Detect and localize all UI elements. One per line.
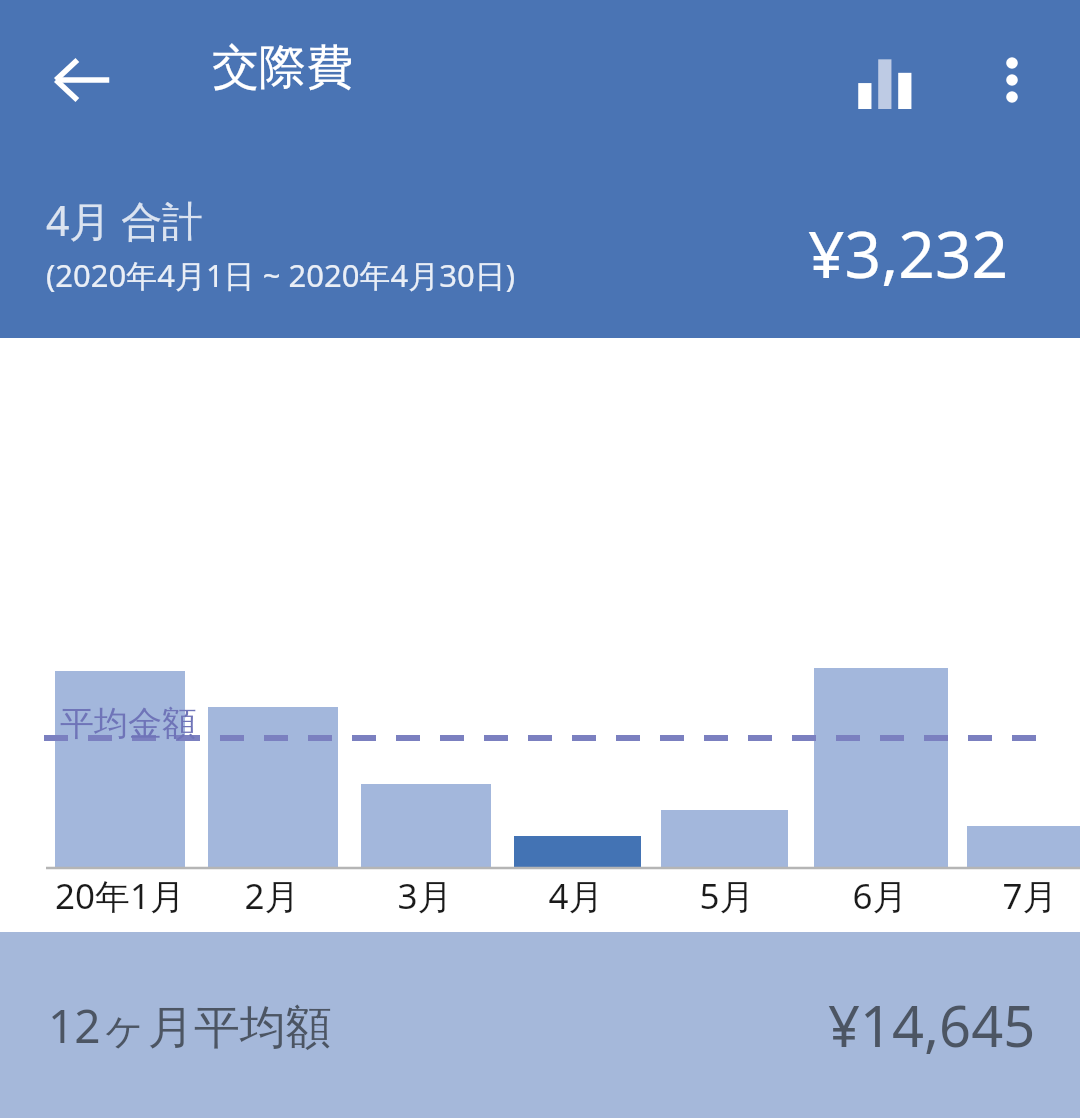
staticText: ¥3,232 — [808, 210, 1009, 297]
staticText: 20年1月 — [30, 872, 210, 920]
staticText: (2020年4月1日 ~ 2020年4月30日) — [46, 254, 515, 296]
staticText: 平均金額 — [60, 702, 196, 745]
staticText: 7月 — [940, 872, 1080, 920]
staticText: 3月 — [335, 872, 515, 920]
staticText: 4月 — [486, 872, 666, 920]
button[interactable]: Bar chart — [826, 26, 938, 138]
staticText: ¥14,645 — [828, 987, 1036, 1063]
button[interactable]: More options — [958, 26, 1066, 134]
staticText: 5月 — [637, 872, 817, 920]
staticText: 4月 合計 — [46, 192, 204, 248]
staticText: 2月 — [182, 872, 362, 920]
staticText: 12ヶ月平均額 — [48, 994, 332, 1057]
button[interactable]: 12ヶ月平均額 — [0, 932, 1080, 1118]
staticText: 6月 — [790, 872, 970, 920]
button[interactable]: Back — [30, 28, 134, 132]
button[interactable]: 交際費 — [206, 34, 359, 101]
staticText: 交際費 — [212, 38, 353, 97]
